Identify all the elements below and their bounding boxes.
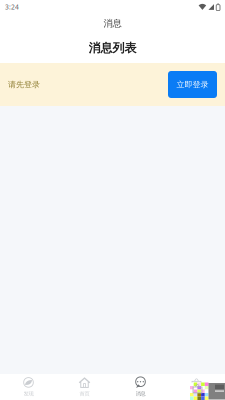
staticText: 我的	[191, 390, 201, 397]
button[interactable]: 首页	[56, 374, 112, 400]
button[interactable]: 立即登录	[168, 71, 217, 98]
button[interactable]: 我的	[168, 374, 224, 400]
staticText: 3:24	[5, 3, 19, 11]
staticText: 立即登录	[176, 80, 208, 89]
staticText: 消息	[135, 390, 145, 397]
staticText: 首页	[79, 390, 89, 397]
button[interactable]: 消息	[112, 374, 168, 400]
staticText: 请先登录	[8, 80, 40, 89]
button[interactable]: 发现	[0, 374, 56, 400]
staticText: 消息列表	[88, 41, 136, 55]
staticText: 消息	[103, 18, 121, 29]
staticText: 发现	[23, 390, 33, 397]
